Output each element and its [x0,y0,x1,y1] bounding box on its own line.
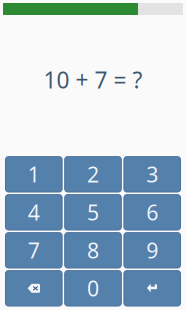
button[interactable]: 6 [124,195,180,230]
button[interactable]: 1 [5,157,62,192]
staticText: 3 [146,160,158,188]
button[interactable]: 5 [65,195,121,230]
button[interactable]: 0 [65,271,121,306]
staticText: 1 [28,160,40,188]
button[interactable]: 7 [5,233,62,268]
staticText: 4 [28,198,40,226]
staticText: 2 [87,160,99,188]
button[interactable]: Delete [5,271,62,306]
button[interactable]: 9 [124,233,180,268]
button[interactable]: 8 [65,233,121,268]
button[interactable]: 3 [124,157,180,192]
staticText: 9 [146,236,158,264]
button[interactable]: 4 [5,195,62,230]
staticText: 8 [87,236,99,264]
staticText: 10 + 7 = ? [43,65,142,95]
staticText: 5 [87,198,99,226]
button[interactable]: 2 [65,157,121,192]
button[interactable]: Submit answer [124,271,180,306]
staticText: 6 [146,198,158,226]
staticText: 0 [87,274,99,302]
staticText: 7 [28,236,40,264]
